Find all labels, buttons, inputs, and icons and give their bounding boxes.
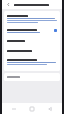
button[interactable]: Back	[5, 1, 12, 8]
button[interactable]	[4, 48, 60, 55]
button[interactable]: Back	[44, 103, 56, 114]
button[interactable]: Home	[26, 103, 38, 114]
button[interactable]	[4, 27, 60, 35]
button[interactable]	[4, 57, 60, 67]
button[interactable]: Recents	[8, 103, 20, 114]
button[interactable]	[4, 73, 60, 81]
button[interactable]	[4, 13, 60, 25]
button[interactable]	[4, 38, 60, 45]
